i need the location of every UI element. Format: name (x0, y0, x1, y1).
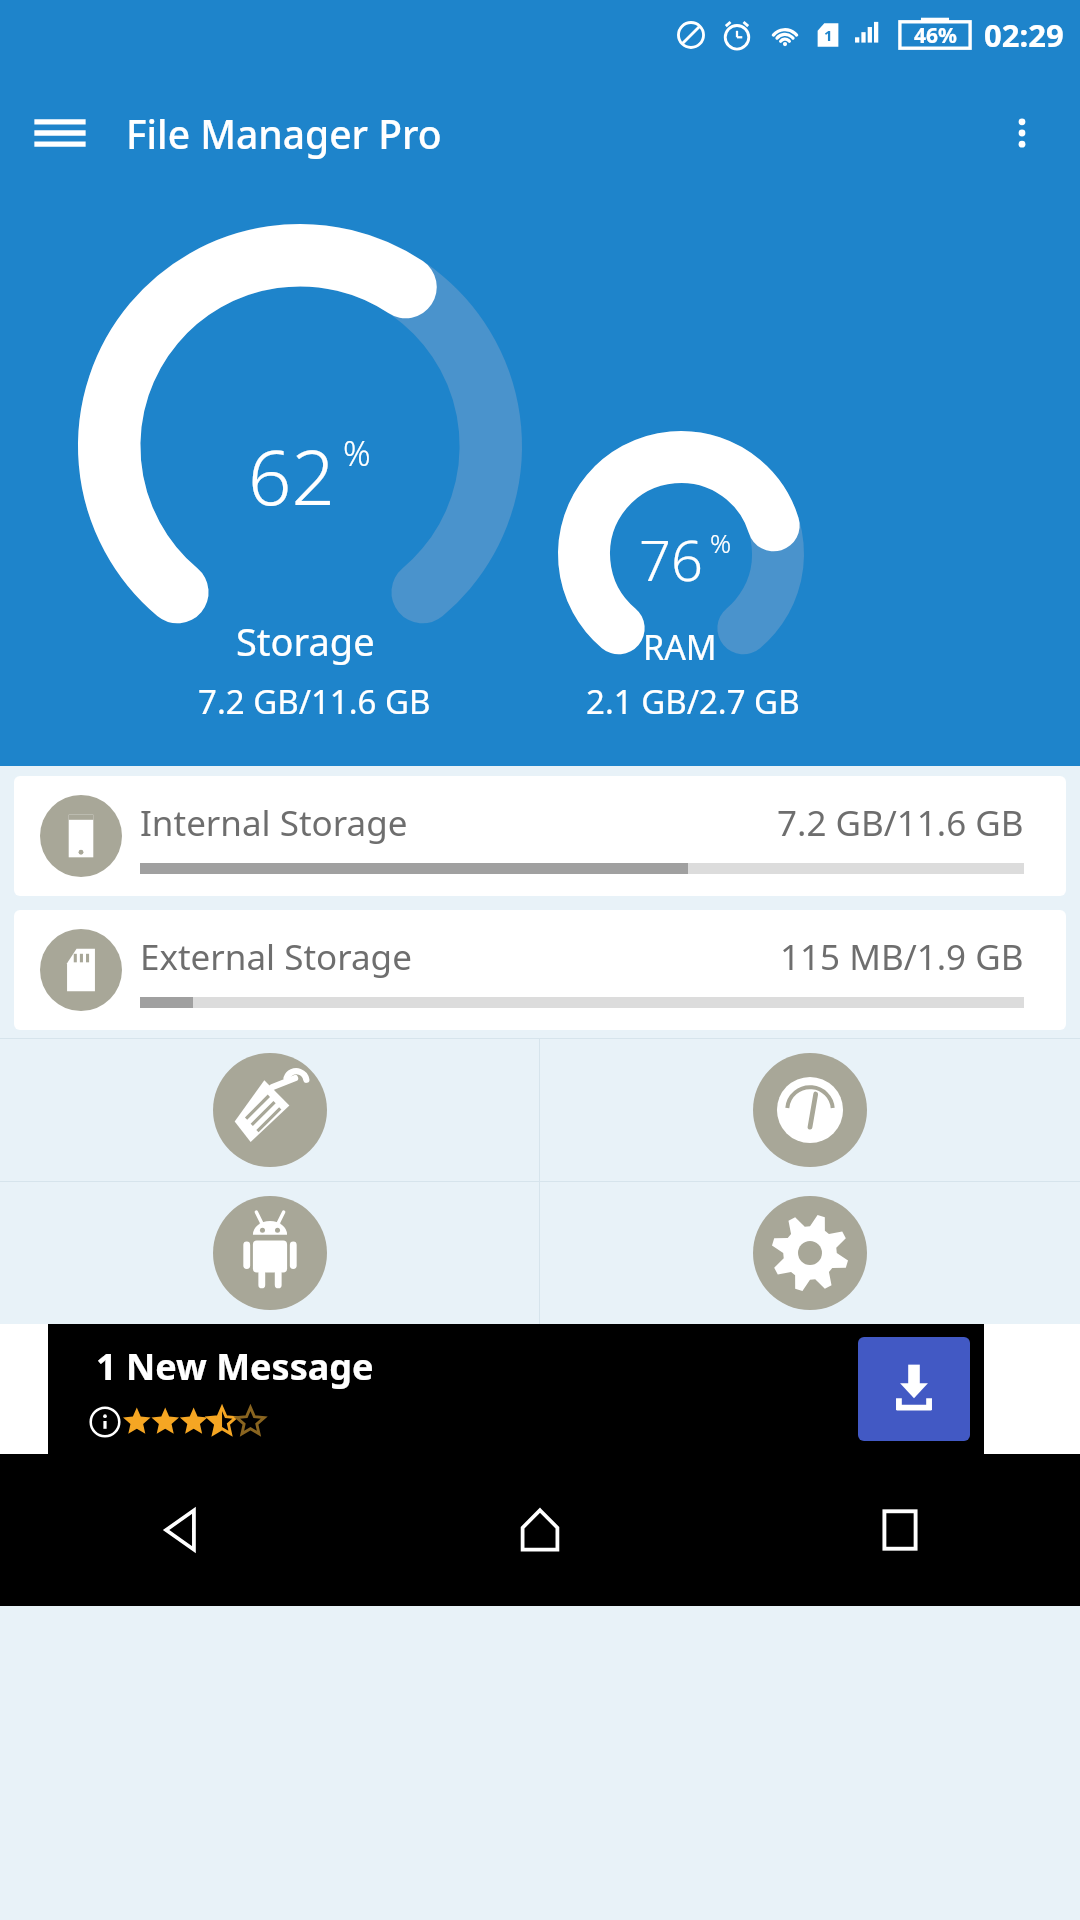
staticText: 02:29 (984, 14, 1064, 56)
staticText: 1 (824, 25, 833, 45)
staticText: 7.2 GB/11.6 GB (198, 679, 431, 724)
staticText: Storage (236, 615, 375, 667)
staticText: 115 MB/1.9 GB (780, 933, 1024, 981)
staticText: External Storage (140, 933, 412, 981)
staticText: 2.1 GB/2.7 GB (586, 679, 800, 724)
button[interactable]: 1 New Message (48, 1324, 984, 1454)
button[interactable]: Analyze storage (540, 1039, 1080, 1181)
button[interactable]: App manager (0, 1182, 539, 1324)
staticText: % (710, 525, 732, 560)
staticText: File Manager Pro (126, 107, 442, 160)
button[interactable]: Storage usage 62 percent (78, 224, 522, 668)
button[interactable]: Install (858, 1337, 970, 1441)
staticText: 1 New Message (96, 1342, 374, 1391)
staticText: 46% (914, 21, 957, 50)
button[interactable]: External Storage (14, 910, 1066, 1030)
staticText: 76 (639, 521, 703, 597)
button[interactable]: Internal Storage (14, 776, 1066, 896)
staticText: 7.2 GB/11.6 GB (777, 799, 1024, 847)
button[interactable]: Recent apps (720, 1454, 1080, 1606)
staticText: Internal Storage (140, 799, 408, 847)
button[interactable]: Home (360, 1454, 720, 1606)
staticText: RAM (643, 624, 717, 670)
button[interactable]: More options (990, 101, 1054, 165)
staticText: 62 (248, 424, 335, 528)
button[interactable]: Clean junk files (0, 1039, 539, 1181)
button[interactable]: Back (0, 1454, 360, 1606)
button[interactable]: Settings (540, 1182, 1080, 1324)
button[interactable]: Open navigation menu (30, 103, 90, 163)
button[interactable]: RAM usage 76 percent (558, 431, 804, 677)
staticText: % (343, 430, 371, 476)
